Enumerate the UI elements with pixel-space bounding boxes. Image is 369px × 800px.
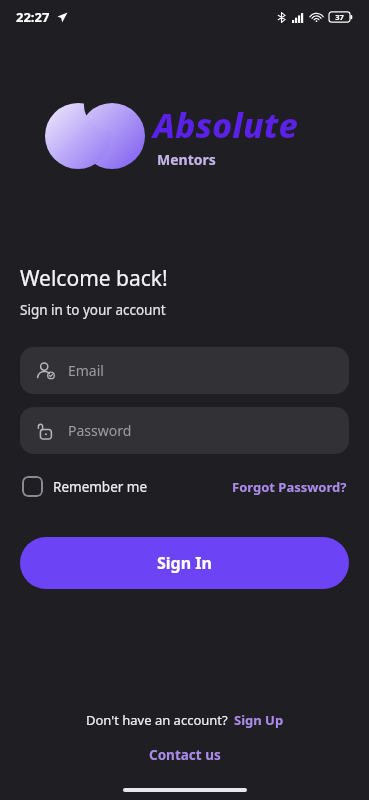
staticText: Sign in to your account (20, 301, 166, 319)
staticText: 22:27 (16, 8, 50, 26)
staticText: Email (68, 361, 104, 380)
staticText: Absolute (153, 102, 298, 148)
staticText: Contact us (149, 746, 221, 764)
staticText: Remember me (53, 478, 148, 496)
staticText: Mentors (157, 150, 216, 169)
staticText: Password (68, 421, 132, 440)
button[interactable]: Sign In (20, 537, 349, 589)
staticText: Welcome back! (20, 264, 168, 293)
button[interactable]: Remember me (22, 476, 148, 497)
button[interactable]: Contact us (0, 746, 369, 764)
button[interactable]: Forgot Password? (232, 478, 347, 496)
staticText: Sign Up (234, 711, 284, 729)
staticText: Don't have an account? (86, 711, 228, 729)
staticText: Forgot Password? (232, 478, 347, 496)
button[interactable]: Sign Up (234, 711, 284, 729)
staticText: Sign In (157, 552, 212, 574)
staticText: 37 (335, 12, 344, 22)
button[interactable]: Email (20, 347, 349, 394)
button[interactable]: Password (20, 407, 349, 454)
